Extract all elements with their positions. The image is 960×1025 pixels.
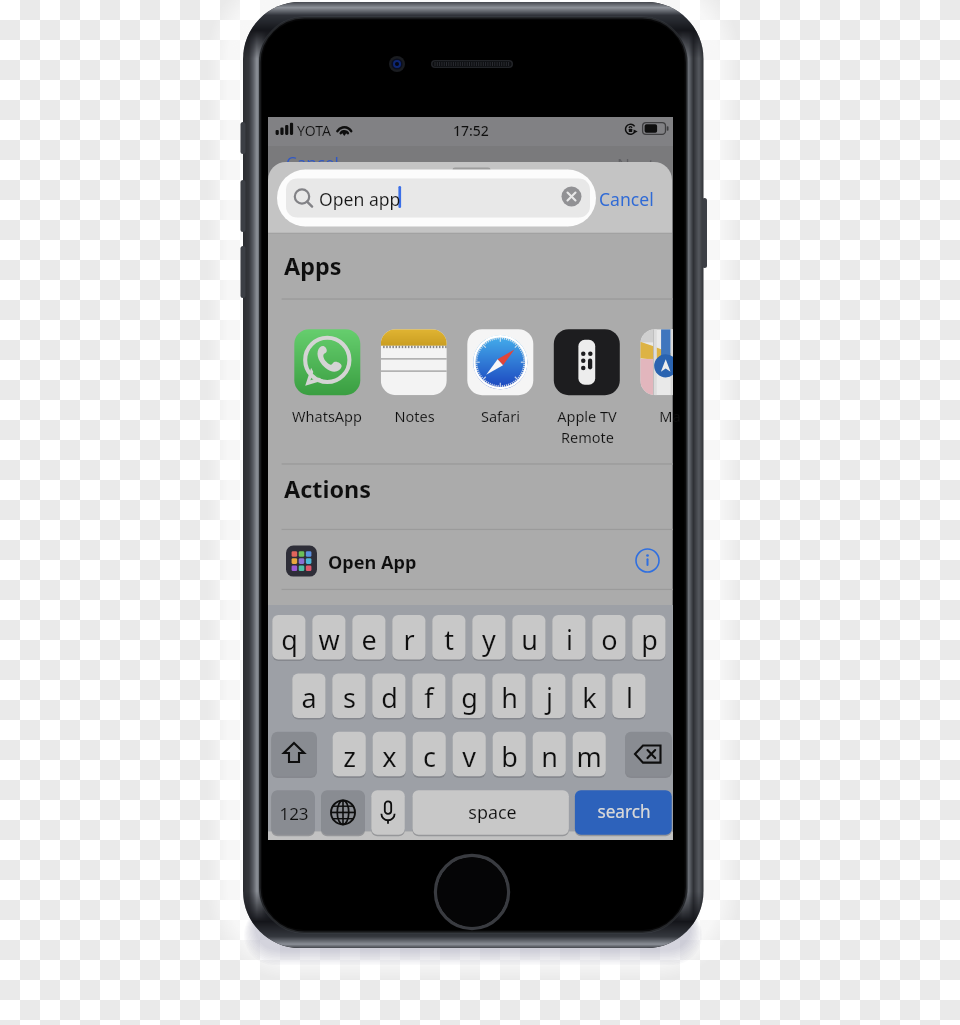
staticText: j	[546, 679, 553, 716]
staticText: h	[501, 679, 518, 716]
staticText: z	[343, 738, 356, 775]
staticText: t	[444, 621, 454, 658]
staticText: g	[461, 679, 478, 716]
staticText: YOTA	[297, 121, 331, 140]
staticText: Next	[617, 153, 655, 176]
staticText: WhatsApp	[292, 406, 362, 426]
staticText: q	[281, 621, 298, 658]
staticText: o	[601, 621, 618, 658]
staticText: p	[641, 621, 658, 658]
staticText: d	[381, 679, 398, 716]
staticText: 17:52	[453, 121, 489, 140]
staticText: Safari	[481, 406, 520, 426]
staticText: Open app	[319, 187, 401, 211]
staticText: space	[468, 800, 517, 824]
staticText: search	[597, 800, 651, 823]
staticText: w	[318, 621, 340, 658]
staticText: Apps	[284, 250, 342, 282]
staticText: Cancel	[599, 187, 654, 211]
staticText: Notes	[394, 406, 435, 426]
staticText: k	[582, 679, 597, 716]
staticText: a	[301, 679, 317, 716]
staticText: y	[482, 621, 496, 658]
staticText: Open App	[328, 550, 417, 575]
staticText: c	[423, 738, 436, 775]
staticText: Apple TV	[557, 406, 617, 426]
staticText: Remote	[561, 427, 614, 447]
staticText: Cancel	[286, 151, 339, 174]
staticText: m	[576, 738, 602, 775]
staticText: Ma	[659, 406, 681, 426]
staticText: s	[343, 679, 356, 716]
staticText: r	[403, 621, 415, 658]
button[interactable]: Cancel	[599, 185, 663, 213]
staticText: i	[566, 621, 573, 658]
staticText: u	[521, 621, 538, 658]
staticText: v	[462, 738, 476, 775]
button[interactable]: Clear search text	[560, 185, 583, 208]
staticText: n	[541, 738, 558, 775]
staticText: f	[424, 679, 434, 716]
staticText: e	[361, 621, 377, 658]
staticText: l	[626, 679, 633, 716]
staticText: 123	[279, 802, 309, 825]
staticText: Actions	[284, 473, 371, 505]
staticText: x	[382, 738, 397, 775]
staticText: b	[501, 738, 518, 775]
